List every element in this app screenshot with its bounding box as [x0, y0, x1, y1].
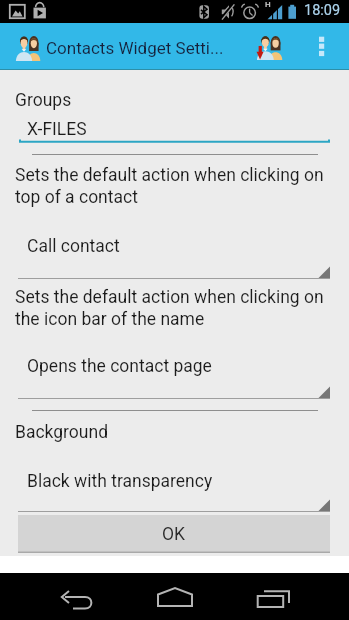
staticText: Call contact [27, 236, 120, 257]
button[interactable]: Recent apps [243, 580, 307, 620]
staticText: Contacts Widget Setti... [46, 38, 224, 58]
staticText: OK [162, 524, 186, 545]
staticText: X-FILES [27, 119, 87, 140]
button[interactable]: Back [45, 580, 109, 620]
staticText: Opens the contact page [27, 356, 212, 377]
staticText: Sets the default action when clicking on… [15, 287, 324, 329]
staticText: Background [15, 422, 109, 443]
staticText: H [265, 0, 271, 9]
button[interactable]: OK [18, 515, 330, 553]
staticText: 18:09 [304, 2, 341, 19]
staticText: Groups [15, 90, 72, 111]
staticText: Black with transparency [27, 471, 213, 492]
staticText: Sets the default action when clicking on… [15, 165, 324, 207]
button[interactable]: Import contacts [250, 29, 288, 65]
button[interactable]: Home [143, 580, 207, 620]
button[interactable]: More options [308, 27, 336, 67]
